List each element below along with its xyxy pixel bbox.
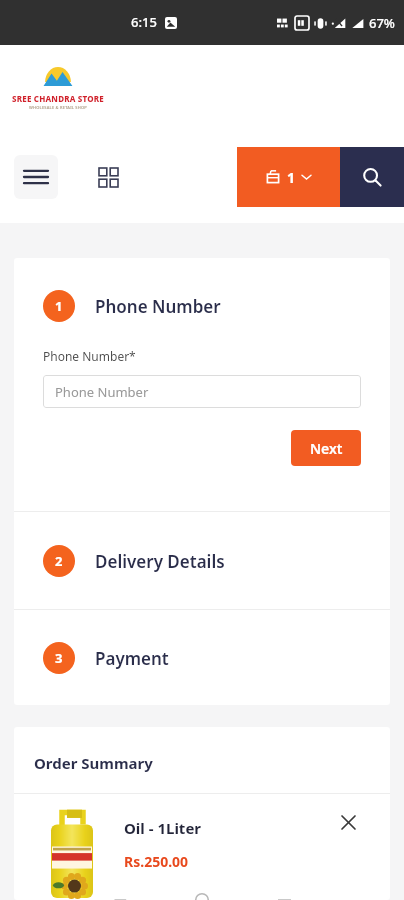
staticText: Phone Number [55,383,149,401]
staticText: Payment [95,647,169,670]
staticText: 6:15 [131,13,157,31]
staticText: Delivery Details [95,550,225,573]
staticText: SREE CHANDRA STORE [12,93,104,104]
staticText: 1 [287,168,296,187]
button[interactable]: Phone Number [43,375,361,408]
button[interactable]: Sree Chandra Store home [10,65,106,111]
staticText: 1 [55,297,63,315]
button[interactable]: 1 [14,258,390,322]
button[interactable]: Categories [86,155,130,199]
button[interactable]: Next [291,430,361,466]
staticText: 67% [369,14,395,32]
button[interactable]: Remove item [332,806,364,838]
staticText: Phone Number [95,295,221,318]
button[interactable]: 3 [14,610,390,705]
staticText: WHOLESALE & RETAIL SHOP [29,105,87,110]
button[interactable]: 2 [14,512,390,609]
button[interactable]: Menu [14,155,58,199]
staticText: Next [310,439,343,458]
staticText: Phone Number* [43,348,136,364]
staticText: Order Summary [34,753,153,773]
button[interactable]: Search [340,147,404,207]
button[interactable]: 1 [237,147,340,207]
staticText: 2 [55,552,63,570]
staticText: Rs.250.00 [124,852,189,871]
staticText: Oil - 1Liter [124,818,202,838]
staticText: 3 [55,649,63,667]
button[interactable]: Oil - 1Liter [14,794,390,900]
